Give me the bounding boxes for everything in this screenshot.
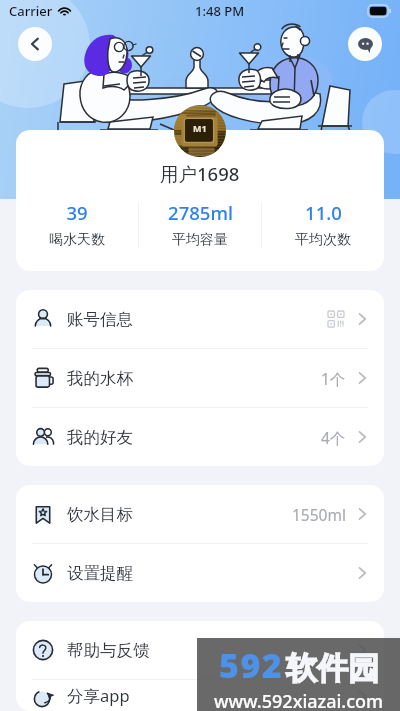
- button[interactable]: 账号信息: [16, 290, 384, 348]
- button[interactable]: Profile photo: [174, 105, 226, 157]
- staticText: 喝水天数: [49, 231, 105, 249]
- staticText: 分享app: [67, 684, 130, 707]
- staticText: 11.0: [305, 200, 342, 225]
- staticText: 账号信息: [67, 309, 133, 330]
- staticText: 592: [219, 642, 284, 688]
- staticText: 软件园: [286, 649, 379, 688]
- button[interactable]: 饮水目标: [16, 485, 384, 543]
- staticText: Carrier: [9, 2, 53, 20]
- button[interactable]: 设置提醒: [16, 544, 384, 602]
- staticText: M1: [193, 122, 207, 134]
- staticText: 我的水杯: [67, 368, 133, 389]
- staticText: 4个: [321, 427, 346, 448]
- staticText: 1个: [321, 368, 346, 389]
- staticText: 饮水目标: [67, 504, 133, 525]
- staticText: 设置提醒: [67, 563, 133, 584]
- staticText: 1550ml: [292, 504, 346, 525]
- staticText: 用户1698: [160, 161, 240, 186]
- button[interactable]: 分享app: [16, 680, 384, 711]
- button[interactable]: 我的水杯: [16, 349, 384, 407]
- button[interactable]: 我的好友: [16, 408, 384, 466]
- staticText: 我的好友: [67, 427, 133, 448]
- staticText: 帮助与反馈: [67, 640, 150, 661]
- staticText: www.592xiazai.com: [214, 689, 384, 711]
- staticText: 39: [66, 200, 88, 225]
- staticText: 平均容量: [172, 231, 228, 249]
- button[interactable]: Back: [18, 27, 52, 61]
- staticText: 平均次数: [295, 231, 351, 249]
- button[interactable]: 帮助与反馈: [16, 621, 384, 679]
- button[interactable]: Messages: [348, 27, 382, 61]
- staticText: 1:48 PM: [195, 2, 245, 20]
- staticText: 2785ml: [168, 200, 233, 225]
